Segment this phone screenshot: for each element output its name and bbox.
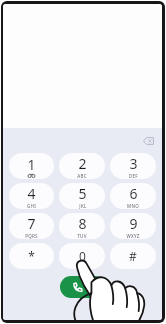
staticText: ABC [77, 173, 87, 179]
button[interactable]: 6 [110, 183, 156, 209]
button[interactable]: 2 [59, 153, 105, 179]
button[interactable]: 9 [110, 213, 156, 239]
staticText: 0 [79, 248, 86, 264]
button[interactable]: 7 [9, 213, 54, 239]
staticText: * [28, 248, 35, 264]
staticText: TUV [77, 233, 87, 239]
staticText: MNO [127, 203, 139, 209]
button[interactable]: 3 [110, 153, 156, 179]
staticText: DEF [129, 173, 138, 179]
button[interactable]: 8 [59, 213, 105, 239]
staticText: 6 [129, 184, 138, 203]
staticText: JKL [79, 203, 87, 209]
button[interactable]: 1 [9, 153, 54, 179]
button[interactable]: 0 [59, 243, 105, 269]
staticText: WXYZ [126, 233, 140, 239]
staticText: 8 [78, 214, 87, 233]
staticText: PQRS [25, 233, 38, 239]
button[interactable]: * [9, 243, 54, 269]
staticText: 3 [129, 154, 138, 173]
button[interactable]: 5 [59, 183, 105, 209]
button[interactable]: 4 [9, 183, 54, 209]
staticText: 9 [129, 214, 138, 233]
button[interactable]: Call [60, 276, 106, 298]
staticText: # [129, 248, 137, 264]
staticText: GHI [27, 203, 36, 209]
button[interactable]: Backspace [138, 134, 158, 148]
staticText: 5 [78, 184, 87, 203]
staticText: 7 [27, 214, 36, 233]
staticText: 2 [78, 154, 87, 173]
staticText: 1 [27, 155, 36, 174]
button[interactable]: # [110, 243, 156, 269]
staticText: 4 [27, 184, 36, 203]
